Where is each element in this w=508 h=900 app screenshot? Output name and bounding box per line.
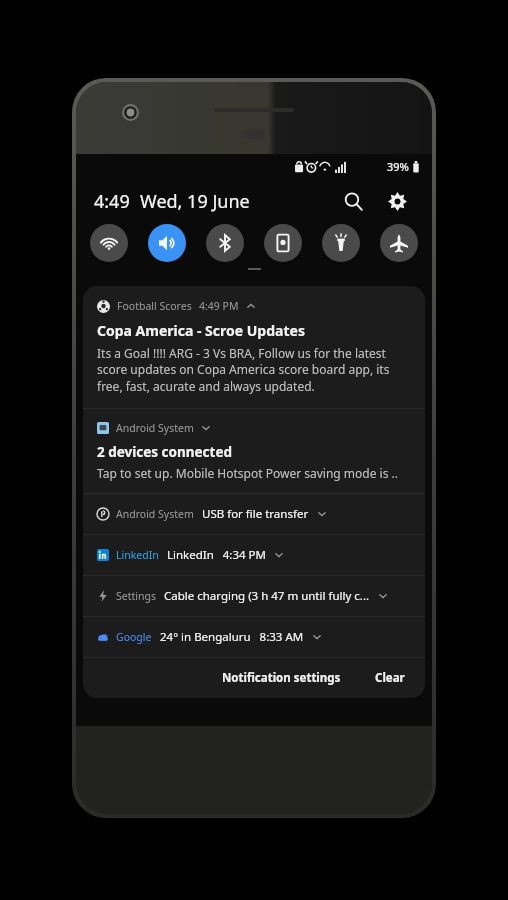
staticText: Copa America - Scroe Updates [97, 321, 305, 340]
button[interactable]: Google [83, 617, 425, 657]
staticText: Wed, 19 June [140, 189, 250, 214]
staticText: 2 devices connected [97, 443, 233, 461]
staticText: Cable charging (3 h 47 m until fully c..… [164, 588, 370, 604]
staticText: 4:49 PM [199, 299, 239, 313]
staticText: LinkedIn 4:34 PM [167, 547, 266, 563]
button[interactable]: Football Scores [83, 286, 425, 408]
staticText: 4:49 [94, 189, 130, 214]
button[interactable]: Airplane mode [380, 224, 418, 262]
button[interactable]: Settings [380, 184, 414, 218]
button[interactable]: Notification settings [216, 666, 347, 690]
staticText: Tap to set up. Mobile Hotspot Power savi… [97, 465, 398, 481]
staticText: Settings [116, 589, 156, 603]
staticText: Android System [116, 421, 194, 435]
staticText: Android System [116, 507, 194, 521]
button[interactable]: Volume [148, 224, 186, 262]
button[interactable]: Wi-Fi [90, 224, 128, 262]
staticText: LinkedIn [116, 548, 159, 562]
staticText: Notification settings [222, 670, 341, 686]
button[interactable]: Bluetooth [206, 224, 244, 262]
staticText: Clear [375, 670, 405, 686]
staticText: Its a Goal !!!! ARG - 3 Vs BRA, Follow u… [97, 345, 411, 395]
button[interactable]: Clear [369, 666, 411, 690]
button[interactable]: Settings [83, 576, 425, 616]
button[interactable]: LinkedIn [83, 535, 425, 575]
button[interactable]: Android System [83, 409, 425, 493]
staticText: 24° in Bengaluru 8:33 AM [160, 629, 304, 645]
staticText: USB for file transfer [202, 506, 309, 522]
staticText: Google [116, 630, 152, 644]
staticText: Football Scores [117, 299, 192, 313]
button[interactable]: Search [336, 184, 370, 218]
staticText: 39% [387, 159, 409, 174]
button[interactable]: Android System [83, 494, 425, 534]
button[interactable]: Flashlight [322, 224, 360, 262]
button[interactable]: Screen [264, 224, 302, 262]
